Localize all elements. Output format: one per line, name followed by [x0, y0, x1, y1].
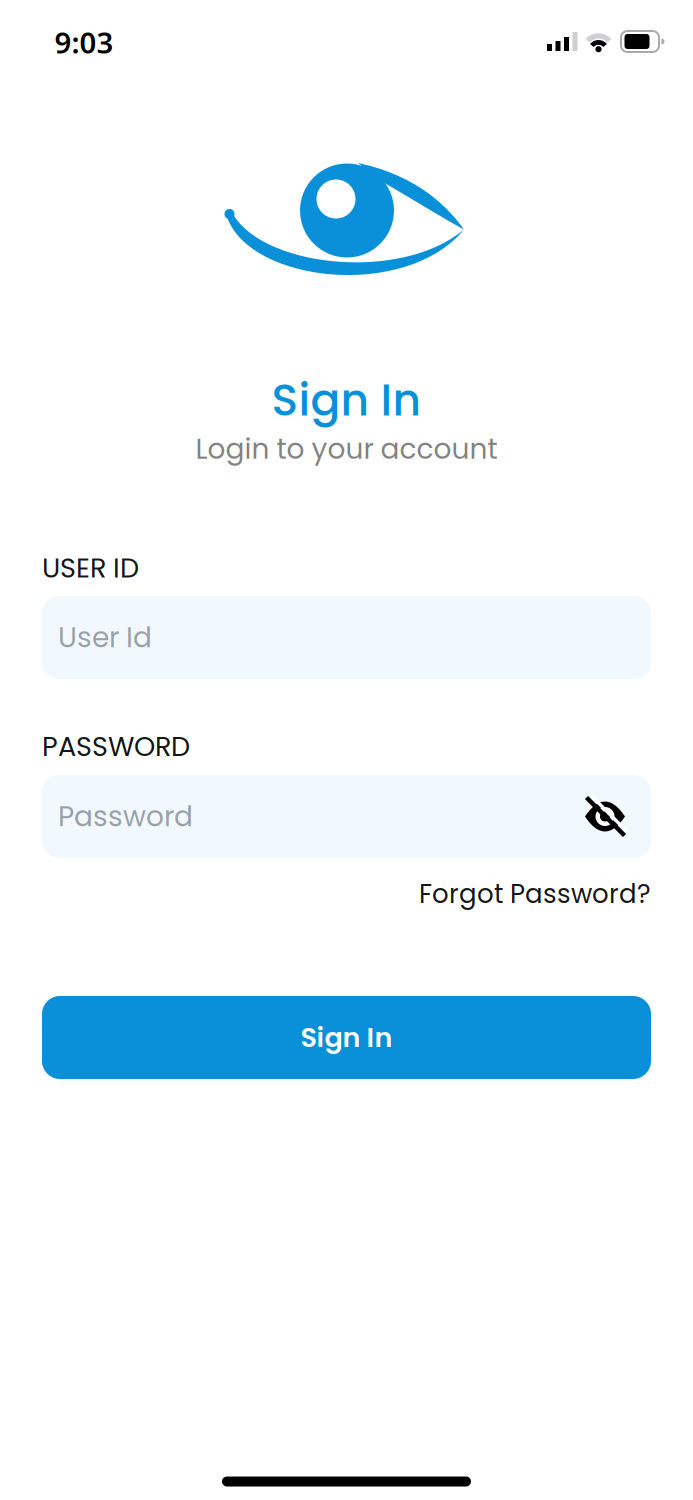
staticText: Sign In	[271, 369, 421, 431]
staticText: USER ID	[42, 549, 139, 587]
button[interactable]: Password	[42, 775, 651, 858]
staticText: PASSWORD	[42, 728, 190, 765]
staticText: Sign In	[300, 1019, 392, 1056]
staticText: 9:03	[54, 22, 113, 61]
staticText: Login to your account	[195, 429, 497, 469]
button[interactable]: User Id	[42, 596, 651, 679]
button[interactable]: Show password	[583, 794, 629, 838]
staticText: Password	[58, 797, 193, 836]
staticText: Forgot Password?	[419, 876, 651, 912]
button[interactable]: Sign In	[42, 996, 651, 1079]
button[interactable]: Forgot Password?	[419, 876, 651, 912]
staticText: User Id	[58, 618, 152, 657]
